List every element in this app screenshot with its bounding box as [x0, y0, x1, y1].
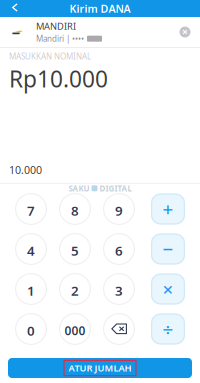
staticText: ATUR JUMLAH — [68, 362, 131, 374]
button[interactable]: 4 — [15, 233, 47, 265]
button[interactable]: Clear — [179, 26, 191, 38]
button[interactable]: 3 — [103, 273, 135, 305]
staticText: 7 — [27, 202, 35, 219]
staticText: 10.000 — [9, 163, 42, 177]
staticText: Rp10.000 — [9, 64, 108, 94]
staticText: MANDIRI — [36, 20, 76, 32]
staticText: Mandiri | •••• — [36, 33, 84, 44]
button[interactable]: Back — [0, 0, 26, 17]
staticText: 5 — [71, 242, 79, 259]
button[interactable]: 2 — [59, 273, 91, 305]
button[interactable]: ATUR JUMLAH — [8, 358, 192, 378]
staticText: ÷ — [162, 317, 173, 341]
button[interactable]: 1 — [15, 273, 47, 305]
button[interactable]: 9 — [103, 193, 135, 225]
button[interactable]: Multiply — [151, 273, 185, 304]
staticText: 3 — [115, 282, 123, 299]
staticText: 000 — [64, 322, 85, 338]
button[interactable]: 6 — [103, 233, 135, 265]
button[interactable]: 0 — [15, 313, 47, 345]
staticText: DIGITAL — [99, 183, 131, 194]
button[interactable]: Backspace — [103, 313, 135, 345]
staticText: Kirim DANA — [69, 1, 130, 16]
button[interactable]: Add — [151, 193, 185, 224]
staticText: 6 — [115, 242, 123, 259]
staticText: MASUKKAN NOMINAL — [9, 51, 91, 62]
staticText: 1 — [27, 282, 35, 299]
staticText: 2 — [71, 282, 79, 299]
button[interactable]: 5 — [59, 233, 91, 265]
staticText: × — [162, 277, 173, 301]
staticText: 9 — [115, 202, 123, 219]
staticText: 4 — [27, 242, 35, 259]
staticText: 8 — [71, 202, 79, 219]
staticText: + — [162, 197, 173, 221]
staticText: SAKU — [68, 183, 89, 194]
button[interactable]: Subtract — [151, 233, 185, 264]
staticText: 0 — [27, 322, 35, 339]
button[interactable]: Divide — [151, 313, 185, 344]
button[interactable]: 8 — [59, 193, 91, 225]
staticText: − — [162, 237, 173, 261]
button[interactable]: 000 — [59, 313, 91, 345]
button[interactable]: 7 — [15, 193, 47, 225]
